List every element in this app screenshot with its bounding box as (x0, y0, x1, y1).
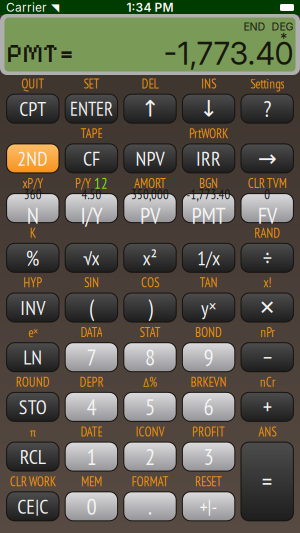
staticText: TAPE (80, 125, 102, 142)
staticText: ✕ (259, 296, 276, 319)
staticText: CLR TVM (248, 175, 287, 191)
staticText: − (263, 342, 272, 372)
staticText: x² (142, 245, 157, 271)
staticText: BGN (199, 175, 218, 191)
staticText: * (280, 30, 287, 47)
staticText: 360 (24, 186, 42, 203)
button[interactable]: 5 (123, 392, 177, 422)
button[interactable]: x² (123, 243, 177, 273)
staticText: DATA (80, 324, 102, 341)
button[interactable]: yˣ (182, 292, 235, 322)
button[interactable]: 0 (240, 193, 294, 223)
staticText: LN (23, 344, 42, 370)
staticText: Settings (250, 76, 284, 92)
staticText: SET (83, 76, 99, 92)
button[interactable]: 7 (65, 342, 118, 372)
staticText: → (258, 145, 277, 172)
staticText: INV (20, 295, 45, 320)
button[interactable]: CF (65, 143, 118, 173)
button[interactable]: ↓ (182, 94, 235, 124)
button[interactable]: 0 (65, 491, 118, 521)
staticText: PrtWORK (189, 125, 228, 142)
button[interactable]: 9 (182, 342, 235, 372)
staticText: N (27, 201, 39, 230)
button[interactable]: ENTER (65, 94, 118, 124)
button[interactable]: +|- (182, 491, 235, 521)
staticText: ANS (258, 424, 276, 440)
button[interactable]: ↑ (123, 94, 177, 124)
staticText: 8 (145, 342, 155, 372)
button[interactable]: LN (6, 342, 59, 372)
button[interactable]: ÷ (240, 243, 294, 273)
button[interactable]: CE|C (6, 491, 59, 521)
button[interactable]: 8 (123, 342, 177, 372)
staticText: CPT (19, 96, 46, 122)
staticText: INS (201, 76, 216, 92)
staticText: PROFIT (192, 424, 225, 440)
button[interactable]: − (240, 342, 294, 372)
staticText: RCL (20, 444, 46, 470)
button[interactable]: RCL (6, 442, 59, 472)
button[interactable]: ( (65, 292, 118, 322)
staticText: 4 (86, 392, 96, 421)
button[interactable]: → (240, 143, 294, 173)
staticText: 9 (204, 342, 214, 372)
button[interactable]: 4.50 (65, 193, 118, 223)
staticText: STAT (139, 324, 160, 341)
staticText: PV (140, 201, 160, 230)
staticText: CLR WORK (10, 473, 56, 490)
staticText: K (30, 225, 36, 241)
staticText: +|- (200, 493, 218, 519)
button[interactable]: ? (240, 94, 294, 124)
staticText: ROUND (16, 374, 50, 390)
staticText: 3 (204, 442, 214, 471)
button[interactable]: ) (123, 292, 177, 322)
staticText: I/Y (80, 201, 102, 230)
button[interactable]: INV (6, 292, 59, 322)
button[interactable]: 4 (65, 392, 118, 422)
button[interactable]: = (240, 442, 294, 521)
staticText: -1,773.40 (163, 35, 293, 72)
button[interactable]: 1/x (182, 243, 235, 273)
button[interactable]: + (240, 392, 294, 422)
button[interactable]: IRR (182, 143, 235, 173)
button[interactable]: . (123, 491, 177, 521)
button[interactable]: CPT (6, 94, 59, 124)
staticText: RAND (254, 225, 280, 241)
button[interactable]: 2 (123, 442, 177, 472)
staticText: 6 (204, 392, 214, 421)
staticText: DATE (80, 424, 102, 440)
button[interactable]: % (6, 243, 59, 273)
button[interactable]: STO (6, 392, 59, 422)
staticText: ↑ (140, 95, 159, 122)
staticText: ( (89, 293, 94, 322)
button[interactable]: 6 (182, 392, 235, 422)
button[interactable]: 1 (65, 442, 118, 472)
staticText: END DEG (243, 20, 293, 33)
button[interactable]: 3 (182, 442, 235, 472)
button[interactable]: -1,773.40 (182, 193, 235, 223)
staticText: 12 (94, 174, 108, 193)
button[interactable]: 2ND (6, 143, 59, 173)
staticText: 5 (145, 392, 155, 421)
button[interactable]: 350,000 (123, 193, 177, 223)
staticText: 7 (86, 342, 96, 372)
button[interactable]: 360 (6, 193, 59, 223)
staticText: yˣ (201, 294, 216, 321)
staticText: Carrier (6, 0, 47, 15)
staticText: 350,000 (131, 186, 169, 203)
staticText: HYP (23, 274, 42, 291)
staticText: BRKEVN (191, 374, 227, 390)
button[interactable]: √x (65, 243, 118, 273)
staticText: 2ND (17, 145, 48, 171)
staticText: = (262, 465, 273, 498)
staticText: MEM (81, 473, 102, 490)
staticText: ICONV (135, 424, 164, 440)
staticText: 0 (264, 186, 270, 203)
button[interactable]: ✕ (240, 292, 294, 322)
staticText: CE|C (17, 493, 48, 519)
staticText: ↓ (199, 95, 218, 122)
staticText: + (263, 392, 272, 421)
button[interactable]: NPV (123, 143, 177, 173)
staticText: NPV (135, 145, 164, 171)
